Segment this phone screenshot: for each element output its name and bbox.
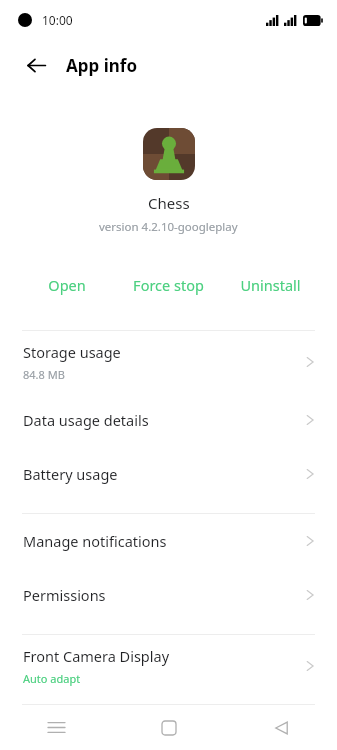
staticText: Auto adapt [23, 671, 81, 686]
button[interactable]: Front Camera Display [0, 635, 337, 697]
button[interactable]: Back [225, 705, 337, 750]
button[interactable]: Force stop [117, 265, 219, 305]
staticText: Storage usage [23, 342, 121, 362]
button[interactable]: Storage usage [0, 331, 337, 393]
staticText: Data usage details [23, 410, 149, 430]
staticText: Battery usage [23, 464, 118, 484]
staticText: Uninstall [240, 275, 301, 295]
staticText: Force stop [133, 275, 204, 295]
button[interactable]: Manage notifications [0, 514, 337, 568]
button[interactable]: Battery usage [0, 447, 337, 501]
staticText: Front Camera Display [23, 646, 170, 666]
button[interactable]: Home [113, 705, 225, 750]
staticText: App info [66, 54, 138, 77]
staticText: 10:00 [42, 12, 73, 28]
button[interactable]: Permissions [0, 568, 337, 622]
staticText: version 4.2.10-googleplay [99, 219, 238, 235]
button[interactable]: Recent apps [0, 705, 113, 750]
staticText: 84.8 MB [23, 367, 65, 382]
staticText: Chess [148, 193, 190, 213]
staticText: Open [48, 275, 86, 295]
button[interactable]: Data usage details [0, 393, 337, 447]
button[interactable]: Back [18, 47, 54, 83]
button[interactable]: Uninstall [219, 265, 321, 305]
staticText: Permissions [23, 585, 106, 605]
button[interactable]: Open [16, 265, 117, 305]
staticText: Manage notifications [23, 531, 167, 551]
